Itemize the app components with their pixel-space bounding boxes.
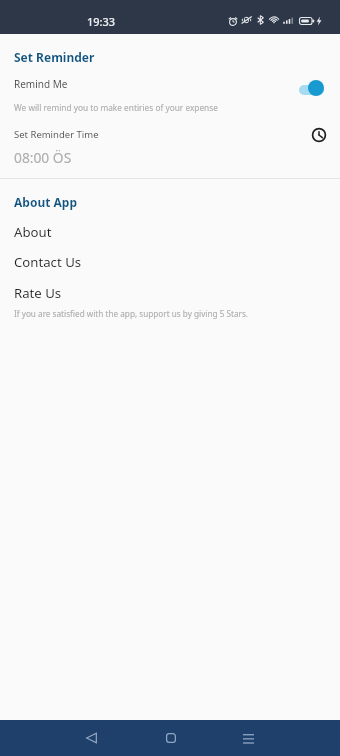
staticText: Remind Me xyxy=(14,77,68,91)
staticText: About App xyxy=(14,194,77,210)
staticText: About xyxy=(14,223,52,241)
button[interactable]: Remind Me xyxy=(0,72,340,112)
staticText: 08:00 ÖS xyxy=(14,148,72,167)
button[interactable]: Remind me toggle, on xyxy=(298,76,332,96)
staticText: Rate Us xyxy=(14,284,62,302)
staticText: If you are satisfied with the app, suppo… xyxy=(14,308,249,319)
staticText: 19:33 xyxy=(87,14,116,29)
button[interactable]: Rate Us xyxy=(0,279,340,307)
button[interactable]: Set Reminder Time xyxy=(0,124,340,168)
button[interactable]: Home xyxy=(148,720,193,756)
staticText: Set Reminder Time xyxy=(14,128,99,141)
staticText: Contact Us xyxy=(14,253,82,271)
button[interactable]: About xyxy=(0,218,340,246)
button[interactable]: Back xyxy=(69,720,114,756)
staticText: Set Reminder xyxy=(14,49,95,65)
button[interactable]: Contact Us xyxy=(0,248,340,276)
button[interactable]: Pick reminder time xyxy=(311,127,327,143)
button[interactable]: Recent apps xyxy=(226,720,271,756)
staticText: We will remind you to make entiries of y… xyxy=(14,102,218,113)
